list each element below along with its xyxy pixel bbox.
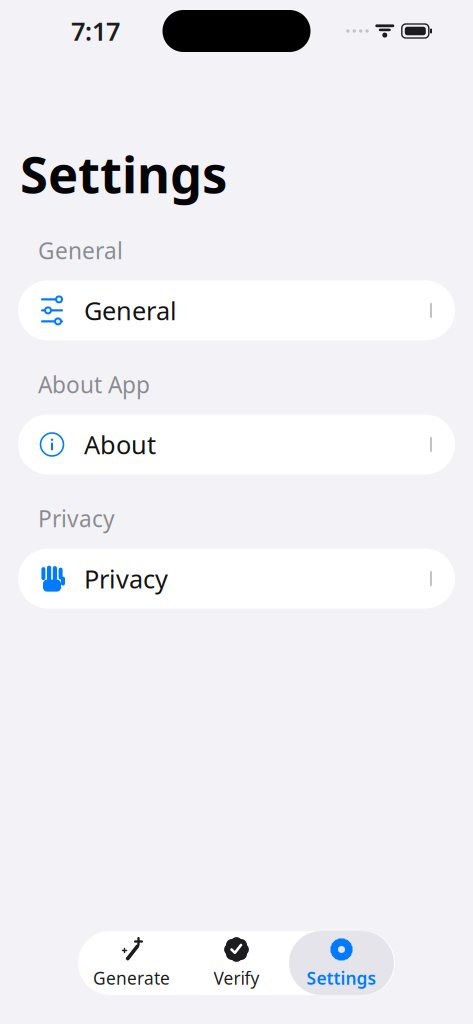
staticText: Privacy [84,562,168,595]
button[interactable]: Settings [289,931,394,995]
staticText: Verify [213,966,259,989]
staticText: General [84,294,177,327]
staticText: Settings [20,140,227,207]
staticText: General [38,235,123,265]
button[interactable]: Privacy [18,549,455,609]
staticText: About App [38,369,150,399]
button[interactable]: Generate [79,931,184,995]
staticText: Generate [93,966,170,989]
button[interactable]: About [18,414,455,474]
staticText: About [84,428,156,461]
staticText: Privacy [38,503,115,534]
button[interactable]: Verify [184,931,289,995]
staticText: 7:17 [71,14,120,48]
staticText: Settings [306,966,376,989]
button[interactable]: General [18,280,455,340]
